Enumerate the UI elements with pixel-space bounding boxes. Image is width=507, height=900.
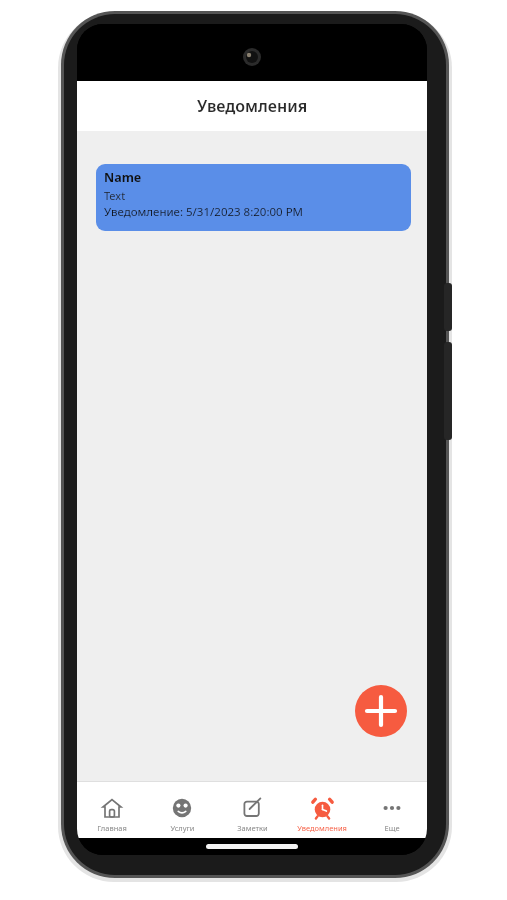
- button[interactable]: Name: [96, 164, 411, 231]
- button[interactable]: Заметки: [217, 782, 287, 838]
- staticText: Уведомление: 5/31/2023 8:20:00 PM: [104, 204, 304, 220]
- staticText: Главная: [97, 823, 127, 833]
- staticText: Услуги: [170, 823, 195, 833]
- staticText: Заметки: [237, 823, 268, 833]
- staticText: Name: [104, 169, 142, 186]
- button[interactable]: Услуги: [147, 782, 217, 838]
- button[interactable]: Главная: [77, 782, 147, 838]
- staticText: Уведомления: [197, 95, 308, 117]
- button[interactable]: Еще: [357, 782, 427, 838]
- button[interactable]: Уведомления: [287, 782, 357, 838]
- staticText: Text: [104, 188, 126, 203]
- staticText: Уведомления: [297, 823, 347, 833]
- staticText: Еще: [384, 823, 400, 833]
- button[interactable]: [355, 685, 407, 737]
